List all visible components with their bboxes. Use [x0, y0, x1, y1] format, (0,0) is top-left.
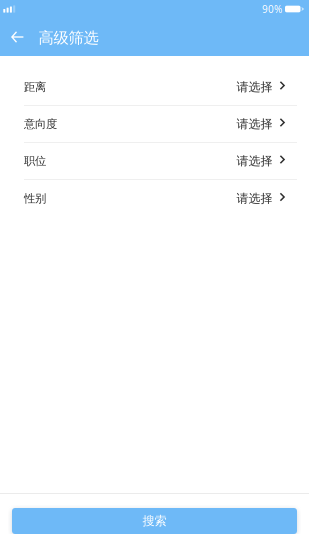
staticText: 90%	[262, 2, 282, 16]
staticText: 意向度	[24, 117, 57, 131]
staticText: 请选择	[236, 191, 272, 206]
staticText: 距离	[24, 80, 46, 94]
button[interactable]: 职位	[0, 143, 309, 180]
button[interactable]: 搜索	[12, 508, 297, 534]
staticText: 请选择	[236, 116, 272, 131]
staticText: 高级筛选	[38, 28, 98, 48]
button[interactable]: 性别	[0, 180, 309, 217]
button[interactable]: 距离	[0, 69, 309, 106]
button[interactable]: Back	[4, 18, 31, 56]
staticText: 搜索	[142, 513, 166, 529]
button[interactable]: 意向度	[0, 106, 309, 143]
staticText: 职位	[24, 154, 46, 168]
staticText: 性别	[24, 191, 46, 206]
staticText: 请选择	[236, 153, 272, 168]
staticText: 请选择	[236, 79, 272, 94]
